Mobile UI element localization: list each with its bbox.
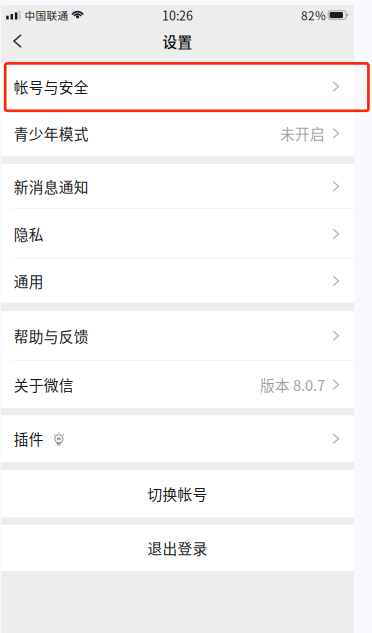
button[interactable]: 新消息通知 <box>1 164 354 209</box>
button[interactable]: 插件 <box>1 415 354 462</box>
staticText: 插件 <box>14 428 44 449</box>
button[interactable]: 隐私 <box>1 209 354 258</box>
button[interactable]: 切换帐号 <box>1 470 354 517</box>
staticText: 中国联通 <box>25 7 69 23</box>
button[interactable]: 关于微信 <box>1 361 354 408</box>
staticText: 通用 <box>14 270 44 291</box>
staticText: 帐号与安全 <box>14 76 89 97</box>
staticText: 青少年模式 <box>14 123 89 144</box>
staticText: 关于微信 <box>14 374 74 395</box>
staticText: 退出登录 <box>147 537 207 558</box>
button[interactable]: 退出登录 <box>1 525 354 571</box>
staticText: 82% <box>301 7 326 24</box>
staticText: 切换帐号 <box>147 483 207 504</box>
button[interactable]: 青少年模式 <box>1 111 354 156</box>
staticText: 版本 8.0.7 <box>260 374 325 395</box>
staticText: 隐私 <box>14 223 44 244</box>
staticText: 设置 <box>162 30 192 52</box>
staticText: 未开启 <box>280 123 325 144</box>
button[interactable]: 通用 <box>1 259 354 303</box>
staticText: 新消息通知 <box>14 176 89 197</box>
staticText: 10:26 <box>162 6 193 24</box>
button[interactable]: 帐号与安全 <box>1 63 354 110</box>
staticText: 帮助与反馈 <box>14 325 89 346</box>
button[interactable]: 帮助与反馈 <box>1 311 354 360</box>
button[interactable]: 返回 <box>1 25 34 57</box>
